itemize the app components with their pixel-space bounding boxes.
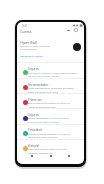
staticText: Recomendados	[28, 83, 49, 87]
button[interactable]	[17, 78, 84, 93]
staticText: Gestionar tu Cuenta	[20, 54, 43, 57]
button[interactable]: Gestionar tu Cuenta	[20, 54, 43, 57]
staticText: Proteccion	[28, 98, 42, 102]
staticText: Te ayudamos a mantener tu cuenta segura …	[28, 72, 77, 75]
staticText: Seguros	[28, 113, 39, 117]
button[interactable]: Recent apps	[65, 152, 73, 160]
staticText: Historial	[28, 144, 40, 148]
staticText: Administra tu cuenta y privacidad	[20, 45, 50, 48]
button[interactable]	[17, 63, 84, 78]
button[interactable]: Profile picture	[73, 43, 81, 51]
staticText: Hjaer Bull	[20, 40, 37, 45]
staticText: con unos ajustes rapidos y sencillos	[28, 75, 60, 78]
staticText: Tienes recomendaciones de seguridad que …	[28, 87, 75, 90]
staticText: revisar ahora mismo en tu cuenta	[28, 91, 58, 94]
staticText: Gestiona tu informacion personal y los d…	[28, 133, 71, 136]
staticText: en Google services	[20, 48, 37, 51]
staticText: dispositivos conectados hoy	[28, 152, 53, 155]
staticText: Controla los avisos que recibes en todos…	[28, 148, 67, 151]
button[interactable]	[17, 124, 84, 139]
staticText: Privacidad	[28, 128, 42, 132]
button[interactable]: Help	[65, 27, 71, 33]
button[interactable]: Account	[73, 27, 79, 33]
staticText: servicios de Google que utilizas	[28, 106, 56, 109]
staticText: Seguros	[28, 67, 39, 71]
button[interactable]	[17, 140, 84, 155]
staticText: Elige los datos que se guardan y se usan…	[28, 102, 70, 105]
button[interactable]: Back	[28, 152, 36, 160]
button[interactable]	[17, 94, 84, 109]
staticText: 9:41	[22, 24, 28, 27]
staticText: Cuenta	[20, 29, 32, 34]
staticText: Revisa la seguridad de tu cuenta y de to…	[28, 117, 70, 120]
staticText: dispositivos que tienes conectados	[28, 121, 59, 124]
button[interactable]: Home	[47, 152, 55, 160]
staticText: contacto de tu cuenta de Google	[28, 136, 57, 139]
button[interactable]	[17, 109, 84, 124]
